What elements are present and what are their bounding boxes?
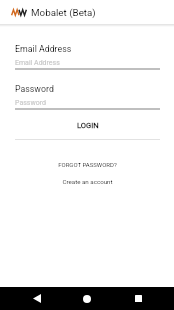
staticText: Email Address — [15, 59, 60, 67]
button[interactable]: Home — [73, 287, 101, 310]
button[interactable]: LOGIN — [15, 112, 160, 138]
button[interactable]: Back — [23, 287, 51, 310]
staticText: LOGIN — [77, 121, 99, 130]
staticText: Mobalet (Beta) — [31, 7, 96, 18]
staticText: Password — [15, 84, 54, 94]
staticText: Create an account — [62, 178, 113, 185]
staticText: Password — [15, 99, 46, 107]
button[interactable]: FORGOT PASSWORD? — [0, 155, 174, 173]
staticText: FORGOT PASSWORD? — [58, 161, 117, 168]
button[interactable]: Recent apps — [124, 287, 152, 310]
staticText: Email Address — [15, 44, 72, 54]
button[interactable]: Create an account — [0, 173, 174, 190]
